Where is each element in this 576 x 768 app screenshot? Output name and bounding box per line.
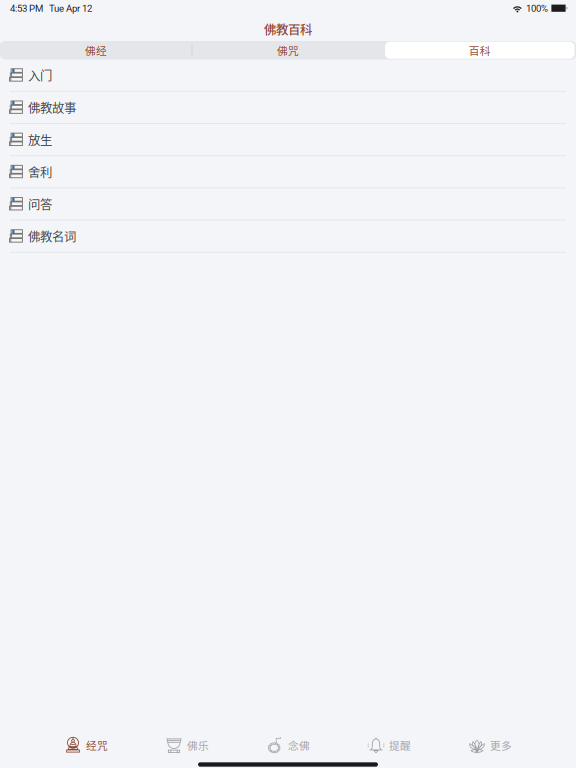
button[interactable]: 佛经 [0, 41, 192, 59]
button[interactable]: 百科 [384, 42, 576, 59]
staticText: 更多 [490, 737, 512, 753]
button[interactable]: 入门 [0, 59, 576, 92]
staticText: 100% [526, 3, 548, 14]
staticText: 念佛 [288, 737, 310, 753]
button[interactable]: 更多 [439, 730, 540, 760]
button[interactable]: 念佛 [237, 730, 338, 760]
button[interactable]: 佛乐 [136, 730, 237, 760]
staticText: Tue Apr 12 [49, 3, 92, 14]
staticText: 入门 [28, 66, 52, 84]
button[interactable]: 佛咒 [192, 41, 384, 59]
staticText: 百科 [469, 42, 491, 58]
staticText: 提醒 [389, 737, 411, 753]
staticText: 佛教故事 [28, 98, 76, 116]
staticText: 佛咒 [277, 42, 299, 58]
button[interactable]: 提醒 [338, 730, 439, 760]
button[interactable]: 佛教名词 [0, 220, 576, 253]
staticText: 佛经 [85, 42, 107, 58]
staticText: 经咒 [86, 737, 108, 753]
button[interactable]: 舍利 [0, 156, 576, 188]
staticText: 4:53 PM [10, 3, 43, 14]
staticText: 佛乐 [187, 737, 209, 753]
button[interactable]: 问答 [0, 188, 576, 220]
staticText: 问答 [28, 195, 52, 213]
button[interactable]: 经咒 [35, 730, 136, 760]
staticText: 佛教名词 [28, 227, 76, 245]
button[interactable]: 佛教故事 [0, 92, 576, 124]
staticText: 佛教百科 [264, 20, 312, 38]
staticText: 舍利 [28, 163, 52, 181]
staticText: 放生 [28, 131, 52, 149]
button[interactable]: 放生 [0, 124, 576, 156]
